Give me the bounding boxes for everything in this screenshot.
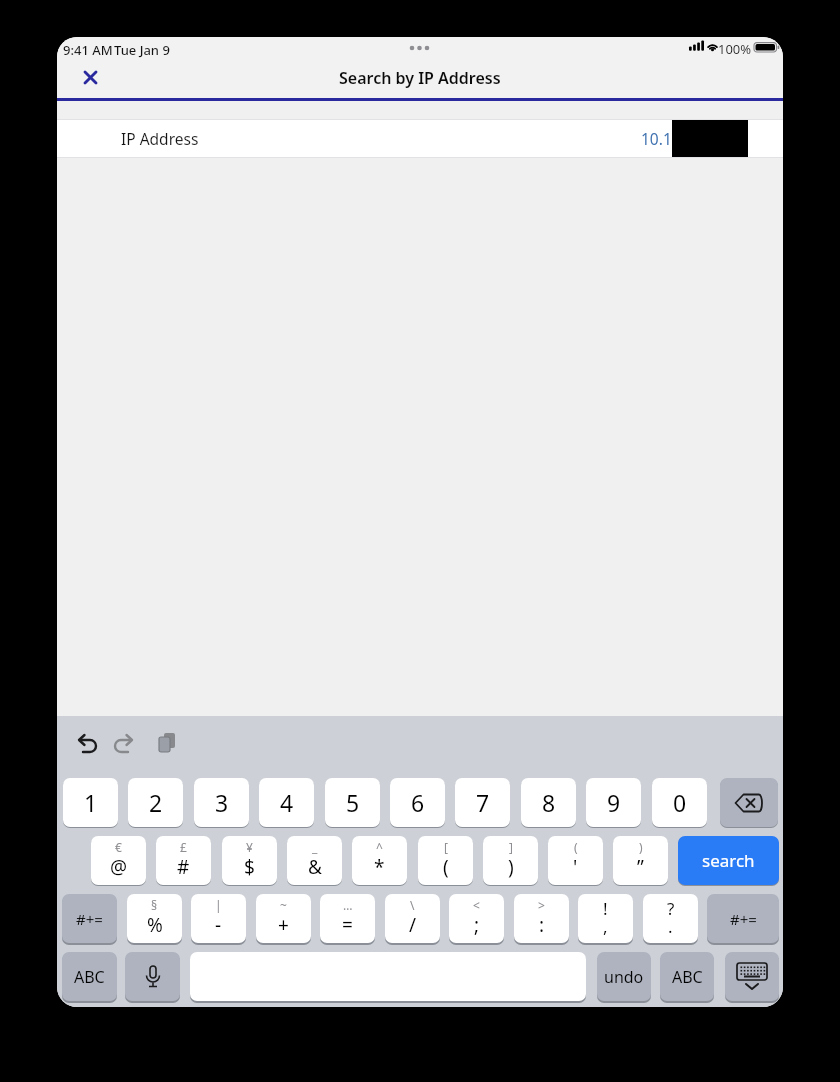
staticText: [ [444, 839, 448, 855]
staticText: @ [110, 854, 128, 880]
staticText: undo [604, 966, 644, 988]
staticText: 6 [411, 787, 425, 818]
button[interactable]: … [320, 894, 375, 943]
staticText: € [115, 839, 122, 855]
button[interactable]: | [191, 894, 246, 943]
staticText: 2 [149, 787, 163, 818]
staticText: < [473, 897, 480, 913]
button[interactable]: 7 [455, 778, 510, 827]
staticText: # [177, 854, 190, 880]
button[interactable]: ¥ [222, 836, 277, 885]
button[interactable]: 4 [259, 778, 314, 827]
staticText: + [278, 912, 289, 938]
button[interactable]: 3 [194, 778, 249, 827]
staticText: ? [667, 897, 675, 920]
staticText: \ [410, 897, 415, 913]
staticText: 10.1 [641, 128, 672, 149]
staticText: ' [573, 854, 578, 880]
staticText: = [342, 912, 353, 938]
staticText: 1 [84, 787, 98, 818]
staticText: £ [180, 839, 187, 855]
button[interactable] [190, 952, 586, 1001]
staticText: 5 [346, 787, 360, 818]
staticText: | [215, 897, 222, 913]
button[interactable]: 5 [325, 778, 380, 827]
button[interactable]: #+= [62, 894, 117, 943]
staticText: Search by IP Address [339, 67, 501, 89]
staticText: / [409, 912, 417, 938]
staticText: 4 [280, 787, 294, 818]
button[interactable]: [ [418, 836, 473, 885]
staticText: ; [474, 912, 480, 938]
button[interactable]: IP Address [57, 119, 783, 157]
staticText: % [147, 912, 163, 938]
button[interactable]: 1 [63, 778, 118, 827]
button[interactable] [725, 952, 779, 1001]
staticText: ( [443, 854, 449, 880]
button[interactable]: ? [643, 894, 698, 943]
staticText: 9 [607, 787, 621, 818]
staticText: ) [508, 854, 514, 880]
staticText: _ [312, 839, 318, 855]
staticText: 8 [542, 787, 556, 818]
staticText: ABC [74, 966, 105, 988]
button[interactable]: 9 [586, 778, 641, 827]
staticText: & [308, 854, 322, 880]
staticText: ] [509, 839, 513, 855]
staticText: IP Address [121, 128, 199, 149]
staticText: 0 [673, 787, 687, 818]
button[interactable]: € [91, 836, 146, 885]
staticText: : [539, 912, 545, 938]
button[interactable]: > [514, 894, 569, 943]
button[interactable]: ) [613, 836, 668, 885]
staticText: 7 [476, 787, 490, 818]
staticText: 100% [718, 40, 752, 57]
button[interactable]: 6 [390, 778, 445, 827]
button[interactable] [71, 59, 111, 97]
button[interactable]: ! [578, 894, 633, 943]
button[interactable]: search [678, 836, 779, 885]
button[interactable]: ( [548, 836, 603, 885]
button[interactable]: 2 [128, 778, 183, 827]
button[interactable]: ABC [660, 952, 714, 1001]
staticText: ( [574, 839, 578, 855]
button[interactable]: #+= [707, 894, 779, 943]
staticText: ” [637, 854, 644, 880]
staticText: ) [639, 839, 643, 855]
staticText: Tue Jan 9 [114, 41, 170, 59]
staticText: ! [603, 897, 608, 920]
staticText: ¥ [246, 839, 253, 855]
button[interactable]: _ [287, 836, 342, 885]
button[interactable]: \ [385, 894, 440, 943]
button[interactable]: ~ [256, 894, 311, 943]
button[interactable]: £ [156, 836, 211, 885]
button[interactable]: < [449, 894, 504, 943]
staticText: , [603, 915, 608, 938]
button[interactable] [720, 778, 778, 827]
button[interactable]: ] [483, 836, 538, 885]
staticText: - [215, 912, 222, 938]
staticText: 3 [215, 787, 229, 818]
staticText: * [374, 854, 385, 880]
button[interactable]: 0 [652, 778, 707, 827]
button[interactable]: 8 [521, 778, 576, 827]
button[interactable]: ^ [352, 836, 407, 885]
staticText: ~ [280, 897, 287, 913]
staticText: #+= [730, 909, 757, 929]
staticText: § [151, 897, 158, 913]
staticText: ABC [672, 966, 703, 988]
staticText: search [702, 849, 755, 872]
button[interactable]: ABC [62, 952, 117, 1001]
button[interactable]: undo [597, 952, 651, 1001]
staticText: $ [244, 854, 255, 880]
button[interactable] [125, 952, 180, 1001]
staticText: 9:41 AM [63, 41, 113, 59]
button[interactable]: § [127, 894, 182, 943]
staticText: ^ [376, 839, 383, 855]
staticText: > [538, 897, 545, 913]
staticText: . [668, 915, 673, 938]
staticText: … [343, 897, 353, 913]
staticText: #+= [76, 909, 103, 929]
